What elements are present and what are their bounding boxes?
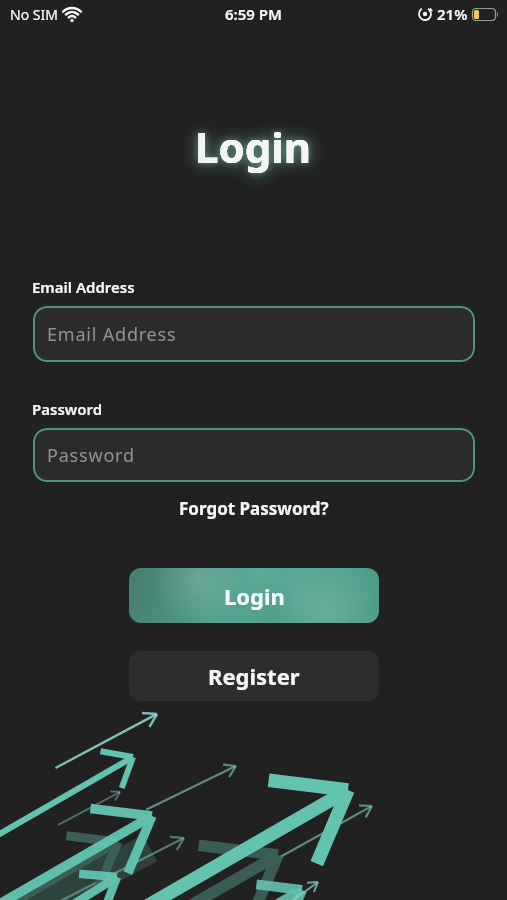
staticText: Password [32,399,103,419]
staticText: 21% [437,4,468,24]
button[interactable]: Register [129,651,379,701]
staticText: Password [47,443,135,468]
staticText: Email Address [47,322,177,347]
button[interactable]: Forgot Password? [179,497,329,520]
button[interactable]: Password [33,428,475,482]
staticText: Email Address [32,277,135,297]
button[interactable]: Email Address [33,306,475,362]
staticText: No SIM [10,5,58,24]
staticText: Login [195,118,312,175]
staticText: 6:59 PM [225,4,282,24]
staticText: Login [195,118,312,175]
staticText: Register [208,661,300,691]
staticText: Login [224,581,285,611]
button[interactable]: Login [129,568,379,623]
